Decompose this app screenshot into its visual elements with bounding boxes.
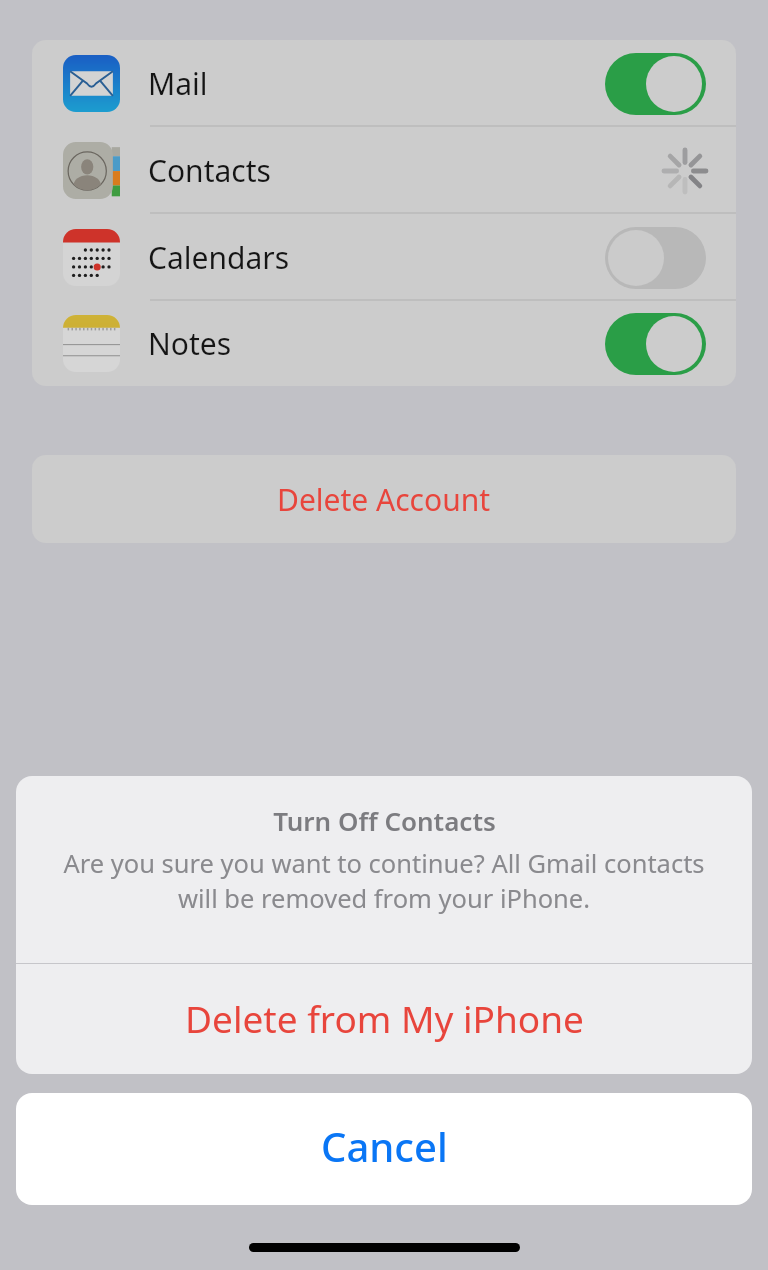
button[interactable]: Notes [32, 301, 736, 386]
staticText: Are you sure you want to continue? All G… [63, 846, 705, 916]
button[interactable]: Cancel [16, 1093, 752, 1205]
staticText: Calendars [148, 237, 290, 278]
button[interactable]: Toggle off [605, 227, 706, 289]
staticText: Contacts [148, 150, 271, 191]
staticText: Delete Account [277, 479, 491, 520]
staticText: Mail [148, 63, 208, 104]
staticText: Delete from My iPhone [185, 993, 584, 1043]
button[interactable]: Delete Account [32, 455, 736, 543]
button[interactable]: Calendars [32, 214, 736, 301]
staticText: Cancel [321, 1119, 448, 1173]
button[interactable]: Delete from My iPhone [16, 964, 752, 1074]
button[interactable]: Contacts [32, 127, 736, 214]
staticText: Turn Off Contacts [273, 803, 496, 838]
staticText: Notes [148, 323, 232, 364]
button[interactable]: Toggle on [605, 313, 706, 375]
button[interactable]: Toggle on [605, 53, 706, 115]
button[interactable]: Mail [32, 40, 736, 127]
